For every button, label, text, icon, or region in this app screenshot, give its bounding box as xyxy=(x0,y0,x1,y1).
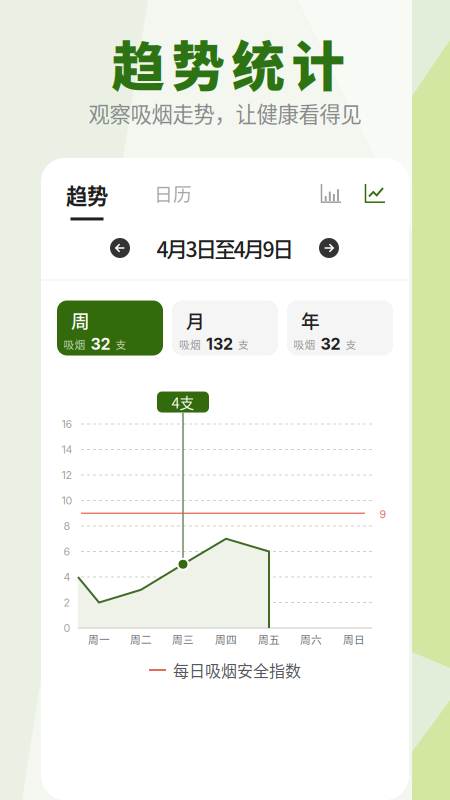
staticText: 周一 xyxy=(88,631,110,647)
button[interactable]: 上一周 xyxy=(110,238,130,258)
staticText: 4支 xyxy=(171,391,194,413)
staticText: 4月3日至4月9日 xyxy=(156,233,293,263)
staticText: 周六 xyxy=(300,631,322,647)
staticText: 6 xyxy=(63,545,70,558)
staticText: 32 xyxy=(90,334,110,354)
staticText: 9 xyxy=(379,508,386,521)
staticText: 32 xyxy=(320,334,340,354)
staticText: 支 xyxy=(238,336,249,352)
staticText: 周二 xyxy=(130,631,152,647)
staticText: 4 xyxy=(63,570,70,583)
staticText: 吸烟 xyxy=(63,336,85,352)
staticText: 周五 xyxy=(258,631,280,647)
button[interactable]: 周 xyxy=(57,300,163,355)
staticText: 吸烟 xyxy=(293,336,315,352)
staticText: 周三 xyxy=(172,631,194,647)
staticText: 日历 xyxy=(154,179,192,206)
staticText: 支 xyxy=(115,336,126,352)
staticText: 12 xyxy=(61,468,72,481)
staticText: 周日 xyxy=(343,631,365,647)
staticText: 2 xyxy=(63,596,70,609)
button[interactable]: 柱状图 xyxy=(315,178,346,208)
staticText: 0 xyxy=(63,621,70,634)
staticText: 8 xyxy=(63,519,70,532)
button[interactable]: 日历 xyxy=(144,171,202,214)
staticText: 10 xyxy=(61,494,72,507)
staticText: 吸烟 xyxy=(179,336,201,352)
staticText: 16 xyxy=(61,417,72,430)
staticText: 周 xyxy=(71,306,90,333)
staticText: 月 xyxy=(186,306,205,333)
staticText: 年 xyxy=(301,306,320,333)
staticText: 趋势统计 xyxy=(111,24,344,102)
button[interactable]: 折线图 xyxy=(359,178,390,208)
staticText: 132 xyxy=(206,334,233,354)
button[interactable]: 月 xyxy=(172,300,278,355)
button[interactable]: 趋势 xyxy=(60,176,114,224)
button[interactable]: 年 xyxy=(287,300,393,355)
staticText: 观察吸烟走势，让健康看得见 xyxy=(88,98,361,128)
staticText: 14 xyxy=(61,443,72,456)
staticText: 周四 xyxy=(215,631,237,647)
staticText: 支 xyxy=(345,336,356,352)
button[interactable]: 下一周 xyxy=(319,238,339,258)
staticText: 趋势 xyxy=(66,180,108,210)
staticText: 每日吸烟安全指数 xyxy=(173,658,301,682)
